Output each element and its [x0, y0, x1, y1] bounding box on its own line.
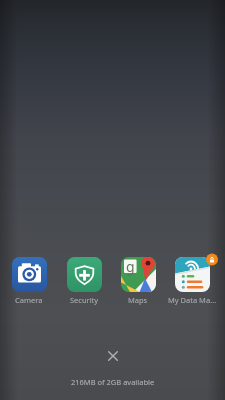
- staticText: My Data Ma…: [168, 295, 217, 305]
- button[interactable]: Camera: [2, 257, 56, 305]
- staticText: Security: [70, 295, 99, 305]
- staticText: Camera: [15, 295, 43, 305]
- button[interactable]: [97, 340, 128, 371]
- staticText: Maps: [128, 295, 148, 305]
- button[interactable]: Security: [57, 257, 111, 305]
- button[interactable]: My Data Ma…: [165, 257, 219, 305]
- staticText: g: [126, 257, 135, 276]
- button[interactable]: g: [111, 257, 165, 305]
- staticText: 216MB of 2GB available: [71, 377, 155, 387]
